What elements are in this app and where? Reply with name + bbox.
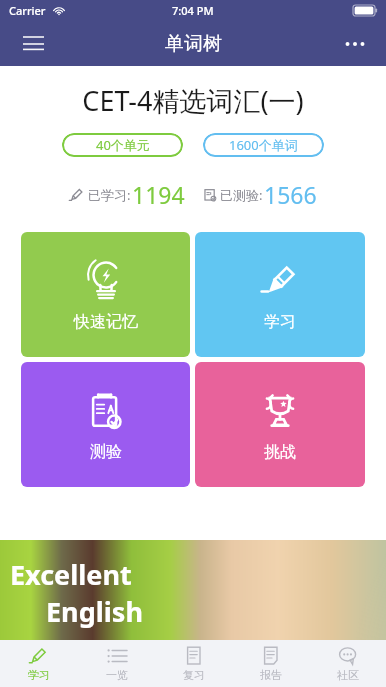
staticText: 一览 bbox=[106, 668, 128, 682]
staticText: 学习 bbox=[264, 312, 296, 332]
button[interactable]: 测验 bbox=[21, 362, 190, 487]
staticText: 1600个单词 bbox=[229, 136, 298, 154]
staticText: 已学习: bbox=[88, 186, 131, 204]
staticText: 挑战 bbox=[264, 442, 296, 462]
staticText: 社区 bbox=[337, 668, 359, 682]
staticText: 7:04 PM bbox=[172, 3, 214, 18]
staticText: CET-4精选词汇(一) bbox=[82, 82, 304, 119]
button[interactable]: 报告 bbox=[232, 640, 309, 687]
button[interactable]: 挑战 bbox=[195, 362, 365, 487]
staticText: 已测验: bbox=[220, 186, 263, 204]
button[interactable]: 1600个单词 bbox=[203, 133, 324, 157]
staticText: 测验 bbox=[90, 442, 122, 462]
staticText: 快速记忆 bbox=[74, 312, 138, 332]
button[interactable]: 学习 bbox=[0, 640, 78, 687]
button[interactable]: Menu bbox=[12, 23, 54, 65]
staticText: 学习 bbox=[28, 668, 50, 682]
staticText: 40个单元 bbox=[96, 136, 150, 154]
staticText: 报告 bbox=[260, 668, 282, 682]
button[interactable]: 一览 bbox=[78, 640, 155, 687]
button[interactable]: 复习 bbox=[155, 640, 232, 687]
staticText: 1194 bbox=[132, 179, 185, 210]
button[interactable]: More options bbox=[334, 23, 376, 65]
button[interactable]: 40个单元 bbox=[62, 133, 183, 157]
staticText: 复习 bbox=[183, 668, 205, 682]
button[interactable]: 快速记忆 bbox=[21, 232, 190, 357]
button[interactable]: 学习 bbox=[195, 232, 365, 357]
staticText: Carrier bbox=[9, 3, 46, 18]
staticText: Excellent bbox=[10, 556, 132, 593]
button[interactable]: 社区 bbox=[309, 640, 386, 687]
staticText: 1566 bbox=[264, 179, 317, 210]
staticText: English bbox=[46, 593, 143, 630]
staticText: 单词树 bbox=[165, 32, 222, 56]
